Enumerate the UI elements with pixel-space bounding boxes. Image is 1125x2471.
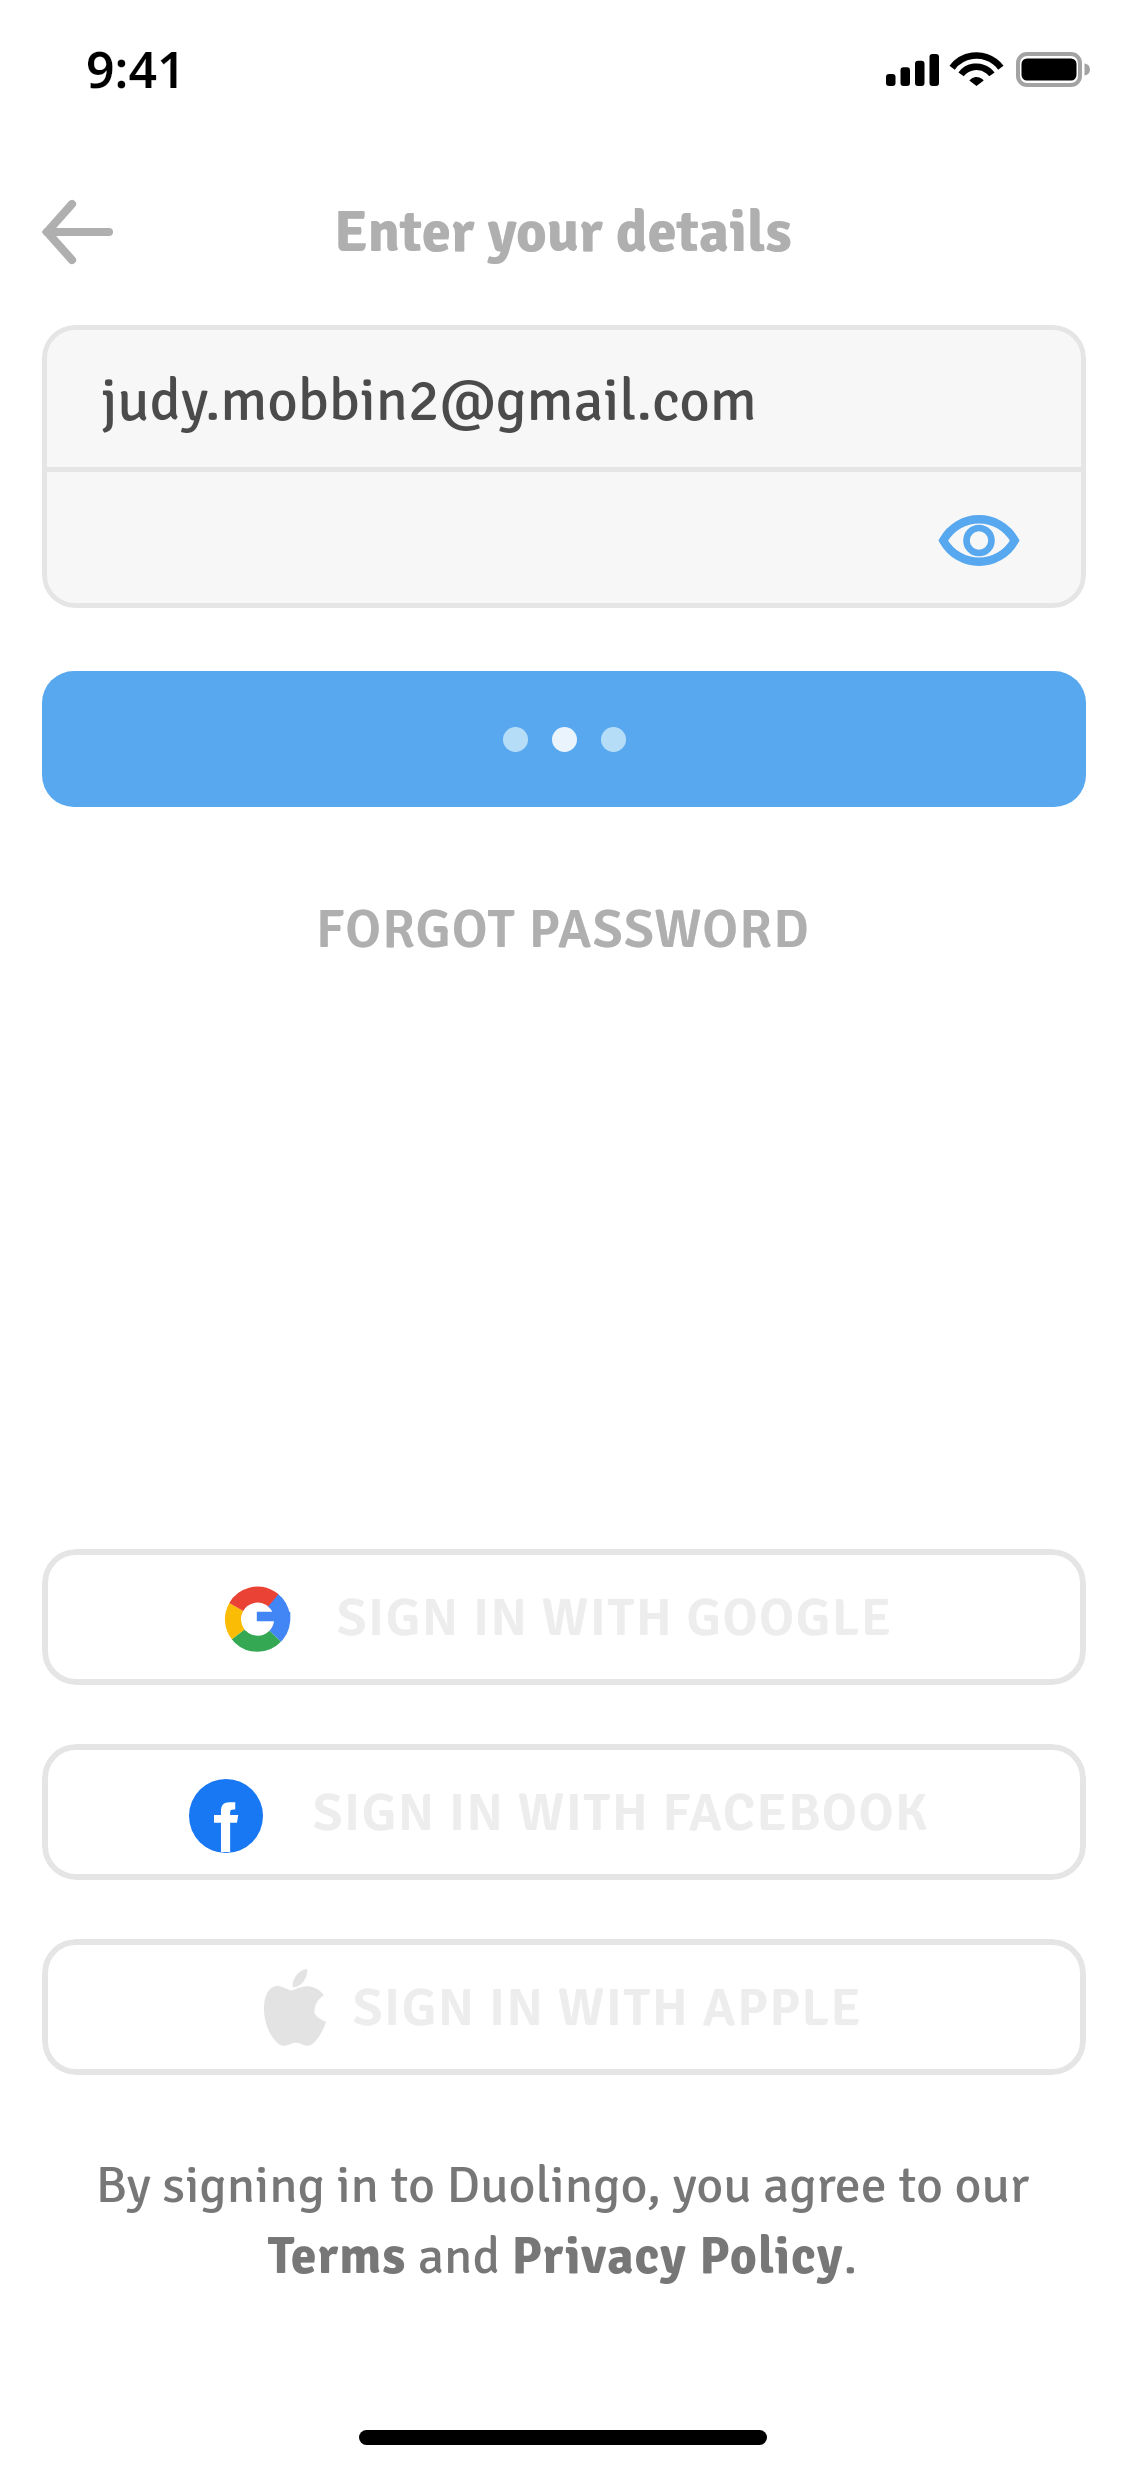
button[interactable]: [42, 671, 1086, 807]
button[interactable]: SIGN IN WITH APPLE: [42, 1939, 1086, 2075]
button[interactable]: judy.mobbin2@gmail.com: [42, 325, 1086, 467]
button[interactable]: Back: [13, 200, 143, 264]
staticText: 9:41: [86, 35, 186, 103]
button[interactable]: By signing in to Duolingo, you agree to …: [70, 2153, 1055, 2288]
button[interactable]: Show password: [937, 506, 1021, 574]
staticText: By signing in to Duolingo, you agree to …: [70, 2153, 1055, 2288]
staticText: SIGN IN WITH FACEBOOK: [313, 1780, 929, 1845]
staticText: SIGN IN WITH APPLE: [353, 1975, 863, 2040]
staticText: FORGOT PASSWORD: [316, 896, 810, 963]
button[interactable]: FORGOT PASSWORD: [286, 880, 840, 979]
staticText: judy.mobbin2@gmail.com: [101, 365, 757, 438]
staticText: Enter your details: [334, 196, 792, 269]
staticText: SIGN IN WITH GOOGLE: [337, 1585, 893, 1650]
button[interactable]: SIGN IN WITH GOOGLE: [42, 1549, 1086, 1685]
button[interactable]: SIGN IN WITH FACEBOOK: [42, 1744, 1086, 1880]
